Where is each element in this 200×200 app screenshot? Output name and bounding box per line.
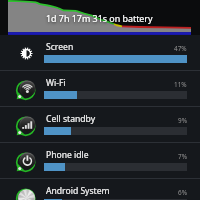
button[interactable]: Wi-Fi <box>0 71 200 107</box>
staticText: Screen <box>46 41 74 53</box>
button[interactable]: Android System <box>0 179 200 200</box>
button[interactable]: Cell standby <box>0 107 200 143</box>
staticText: 11% <box>174 80 187 89</box>
staticText: 6% <box>178 188 187 197</box>
staticText: Android System <box>46 185 110 197</box>
staticText: Cell standby <box>46 113 96 125</box>
staticText: 1d 7h 17m 31s on battery <box>46 12 153 24</box>
staticText: 9% <box>178 116 187 125</box>
staticText: Wi-Fi <box>46 77 66 89</box>
button[interactable]: Screen <box>0 35 200 71</box>
staticText: Phone idle <box>46 149 89 161</box>
staticText: 7% <box>178 152 187 161</box>
staticText: 47% <box>174 44 187 53</box>
button[interactable]: Phone idle <box>0 143 200 179</box>
